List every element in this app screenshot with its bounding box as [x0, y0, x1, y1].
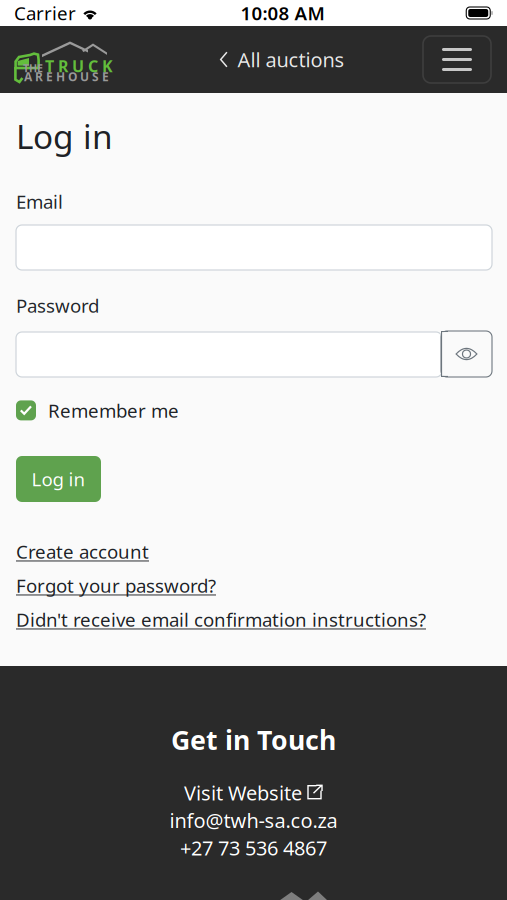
- staticText: Log in: [31, 467, 85, 491]
- staticText: A R E H O U S E: [24, 68, 109, 84]
- staticText: All auctions: [237, 46, 344, 73]
- button[interactable]: Forgot your password?: [16, 573, 216, 598]
- button[interactable]: Didn't receive email confirmation instru…: [16, 607, 426, 632]
- staticText: Remember me: [48, 398, 179, 423]
- button[interactable]: All auctions: [219, 40, 344, 79]
- button[interactable]: Menu: [423, 36, 507, 83]
- button[interactable]: Visit Website: [184, 779, 323, 806]
- staticText: Email: [16, 189, 63, 214]
- staticText: info@twh-sa.co.za: [169, 807, 337, 834]
- staticText: Get in Touch: [171, 722, 336, 757]
- staticText: Password: [16, 293, 99, 318]
- staticText: Forgot your password?: [16, 573, 216, 598]
- button[interactable]: Log in: [16, 456, 101, 502]
- button[interactable]: The Truck Warehouse home: [0, 36, 114, 82]
- staticText: T R U C K: [45, 55, 113, 77]
- staticText: +27 73 536 4867: [180, 834, 327, 861]
- staticText: Didn't receive email confirmation instru…: [16, 607, 426, 632]
- button[interactable]: Show password: [441, 331, 492, 377]
- button[interactable]: +27 73 536 4867: [180, 834, 327, 861]
- button[interactable]: Create account: [16, 539, 149, 564]
- staticText: Log in: [16, 114, 113, 158]
- staticText: Visit Website: [184, 779, 302, 806]
- button[interactable]: Remember me: [16, 398, 179, 423]
- staticText: Create account: [16, 539, 149, 564]
- button[interactable]: info@twh-sa.co.za: [169, 807, 337, 834]
- staticText: 10:08 AM: [240, 1, 324, 25]
- staticText: THE: [23, 61, 43, 75]
- staticText: Carrier: [14, 1, 76, 25]
